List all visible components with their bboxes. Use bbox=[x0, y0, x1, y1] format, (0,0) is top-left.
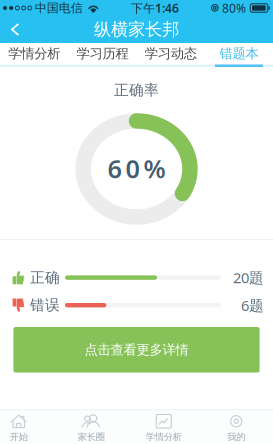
staticText: 错误 bbox=[30, 296, 60, 314]
button[interactable]: 开始 bbox=[0, 414, 55, 442]
staticText: 正确率 bbox=[114, 81, 159, 99]
button[interactable]: 学习历程 bbox=[68, 43, 136, 67]
button[interactable]: 学情分析 bbox=[0, 43, 68, 67]
staticText: 中国电信 bbox=[35, 1, 83, 15]
button[interactable]: 家长圈 bbox=[55, 414, 127, 442]
staticText: 点击查看更多详情 bbox=[84, 342, 188, 358]
button[interactable]: 学情分析 bbox=[127, 414, 200, 442]
button[interactable]: 点击查看更多详情 bbox=[0, 327, 273, 372]
staticText: 下午1:46 bbox=[131, 0, 179, 16]
staticText: 学习动态 bbox=[145, 45, 197, 62]
staticText: 学情分析 bbox=[146, 431, 182, 443]
button[interactable]: 我的 bbox=[200, 414, 272, 442]
button[interactable]: Back bbox=[0, 16, 30, 43]
staticText: 学情分析 bbox=[8, 45, 60, 62]
staticText: 20題 bbox=[233, 268, 264, 287]
staticText: 错题本 bbox=[219, 45, 258, 62]
staticText: 我的 bbox=[227, 431, 245, 443]
button[interactable]: 错题本 bbox=[205, 43, 273, 67]
staticText: 纵横家长邦 bbox=[94, 19, 179, 40]
staticText: 60% bbox=[107, 152, 165, 185]
staticText: 正确 bbox=[30, 269, 60, 287]
staticText: 6题 bbox=[241, 295, 264, 315]
staticText: 80% bbox=[222, 0, 246, 16]
staticText: 学习历程 bbox=[76, 45, 128, 62]
staticText: 开始 bbox=[10, 431, 28, 443]
staticText: 家长圈 bbox=[78, 431, 105, 443]
button[interactable]: 学习动态 bbox=[136, 43, 205, 67]
